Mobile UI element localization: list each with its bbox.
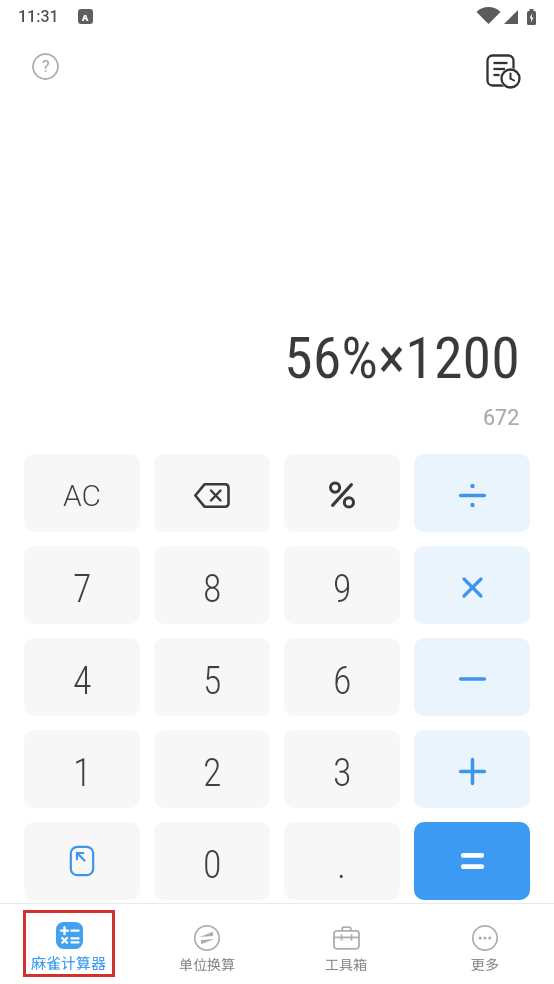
staticText: 11:31 [18,7,59,26]
staticText: 麻雀计算器 [31,952,107,974]
button[interactable]: 8 [154,546,270,624]
button[interactable] [284,454,400,532]
staticText: 0 [203,843,222,888]
button[interactable] [414,638,530,716]
button[interactable]: 更多 [415,904,554,984]
button[interactable]: 5 [154,638,270,716]
button[interactable]: 4 [24,638,140,716]
button[interactable] [414,546,530,624]
staticText: 单位换算 [179,954,235,974]
staticText: 5 [203,659,222,704]
button[interactable]: 2 [154,730,270,808]
staticText: 672 [483,405,520,430]
button[interactable] [24,822,140,900]
staticText: 4 [73,659,92,704]
button[interactable] [414,822,530,900]
staticText: ? [42,57,50,76]
button[interactable] [414,730,530,808]
button[interactable]: 工具箱 [276,904,415,984]
staticText: 工具箱 [325,954,367,974]
button[interactable]: 0 [154,822,270,900]
button[interactable]: AC [24,454,140,532]
button[interactable]: . [284,822,400,900]
staticText: 56%×1200 [284,324,520,392]
button[interactable]: 7 [24,546,140,624]
staticText: 2 [203,751,222,796]
button[interactable]: ? [32,53,59,80]
staticText: 3 [333,751,352,796]
button[interactable]: 麻雀计算器 [0,904,138,984]
button[interactable]: 6 [284,638,400,716]
button[interactable]: 单位换算 [138,904,276,984]
button[interactable] [485,53,521,89]
button[interactable]: 9 [284,546,400,624]
staticText: . [337,843,347,888]
button[interactable]: 1 [24,730,140,808]
button[interactable] [154,454,270,532]
staticText: AC [63,478,102,513]
staticText: 6 [333,659,352,704]
button[interactable] [414,454,530,532]
staticText: 8 [203,567,222,612]
staticText: A [82,11,89,23]
staticText: 1 [73,751,92,796]
button[interactable]: 3 [284,730,400,808]
staticText: 9 [333,567,352,612]
staticText: 更多 [471,954,499,974]
staticText: 7 [73,567,92,612]
